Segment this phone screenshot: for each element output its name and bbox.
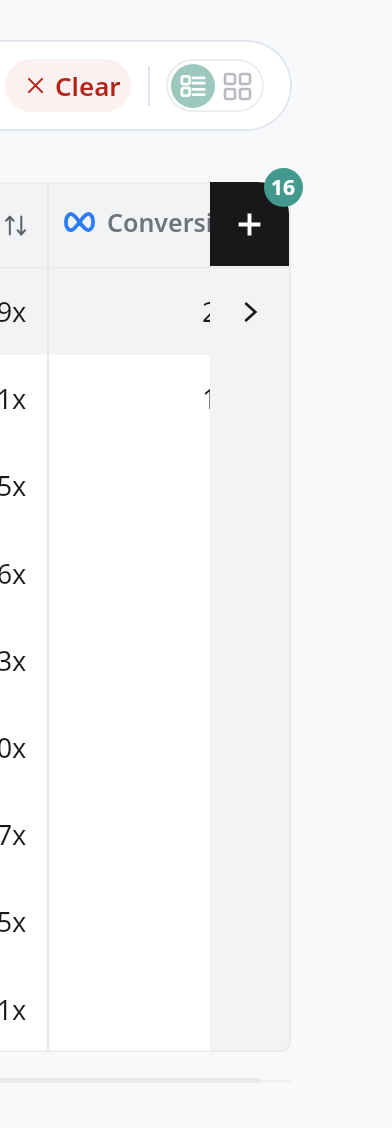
staticText: 2,4 <box>202 293 241 330</box>
staticText: Conversions <box>107 205 257 239</box>
button[interactable]: 2.9x <box>0 268 291 355</box>
staticText: 2.9x <box>0 293 27 330</box>
staticText: 1.5x <box>0 467 27 504</box>
staticText: 3.5x <box>0 903 27 940</box>
staticText: 4.3x <box>0 642 27 679</box>
staticText: 2.6x <box>0 555 27 592</box>
button[interactable]: 2.1x <box>0 966 291 1052</box>
staticText: Clear <box>55 68 121 103</box>
staticText: 3.1x <box>0 380 27 417</box>
staticText: 16 <box>271 173 296 202</box>
button[interactable]: 1.7x <box>0 791 291 878</box>
button[interactable]: 1.5x <box>0 442 291 529</box>
button[interactable]: Sort <box>0 182 47 268</box>
button[interactable]: Clear <box>5 59 131 112</box>
button[interactable]: Open details <box>210 268 291 355</box>
staticText: 2.1x <box>0 991 27 1028</box>
button[interactable]: 4.3x <box>0 617 291 704</box>
staticText: 1,9 <box>202 380 241 417</box>
button[interactable]: 16 columns <box>264 168 303 207</box>
button[interactable]: 2.6x <box>0 530 291 617</box>
button[interactable]: Add column <box>210 182 289 266</box>
staticText: 1.7x <box>0 816 27 853</box>
button[interactable]: Grid view <box>215 64 259 108</box>
button[interactable]: 2.0x <box>0 704 291 791</box>
button[interactable]: 3.1x <box>0 355 291 442</box>
button[interactable]: 3.5x <box>0 878 291 965</box>
button[interactable]: List view <box>171 64 215 108</box>
staticText: 2.0x <box>0 729 27 766</box>
